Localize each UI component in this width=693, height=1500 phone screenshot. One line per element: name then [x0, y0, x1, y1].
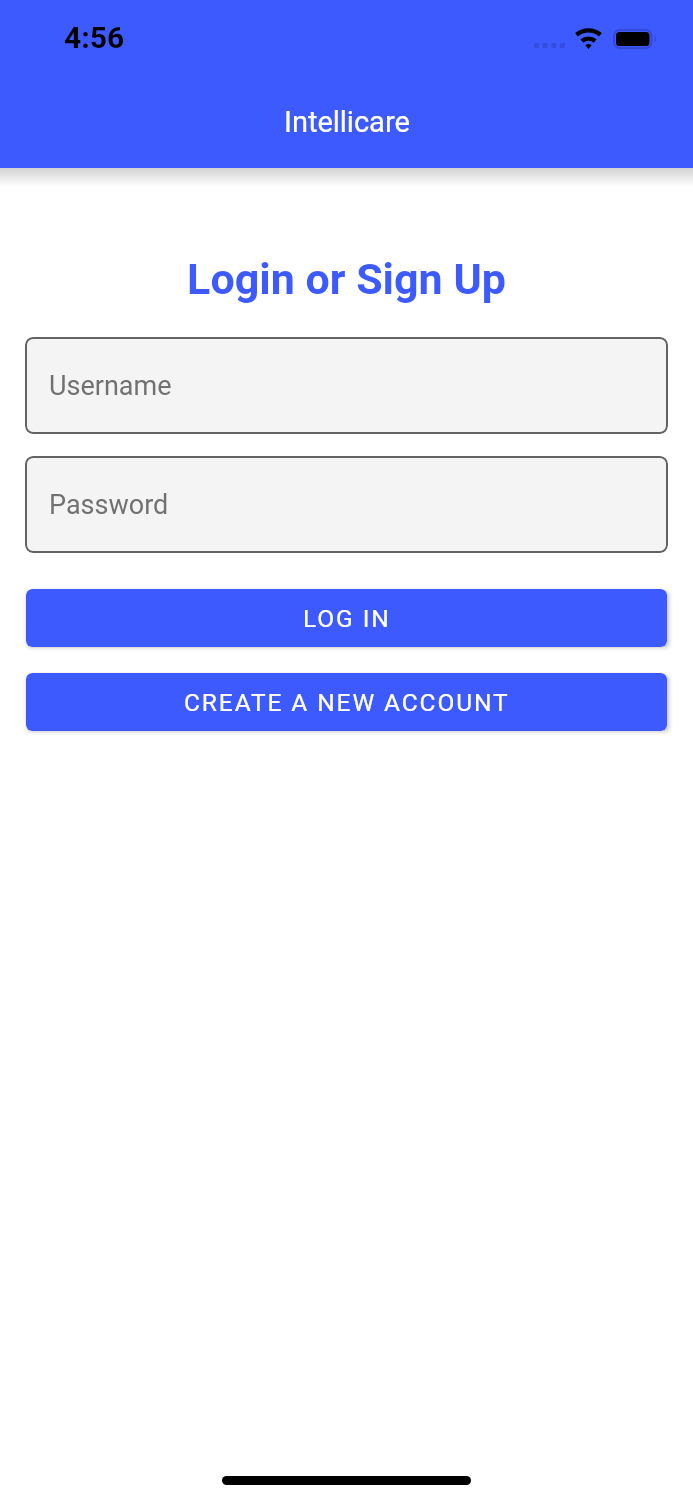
staticText: Password [49, 489, 169, 521]
button[interactable]: Password [25, 456, 668, 553]
button[interactable]: CREATE A NEW ACCOUNT [26, 673, 667, 731]
button[interactable]: Username [25, 337, 668, 434]
button[interactable]: LOG IN [26, 589, 667, 647]
staticText: Intellicare [284, 105, 410, 139]
other: Cellular signal strength [534, 29, 565, 49]
staticText: 4:56 [64, 20, 125, 55]
staticText: CREATE A NEW ACCOUNT [184, 688, 510, 717]
staticText: Username [49, 370, 172, 402]
staticText: LOG IN [303, 604, 391, 633]
other: Battery full [613, 29, 657, 49]
staticText: Login or Sign Up [0, 254, 693, 304]
other: Wi-Fi connected [575, 28, 602, 49]
